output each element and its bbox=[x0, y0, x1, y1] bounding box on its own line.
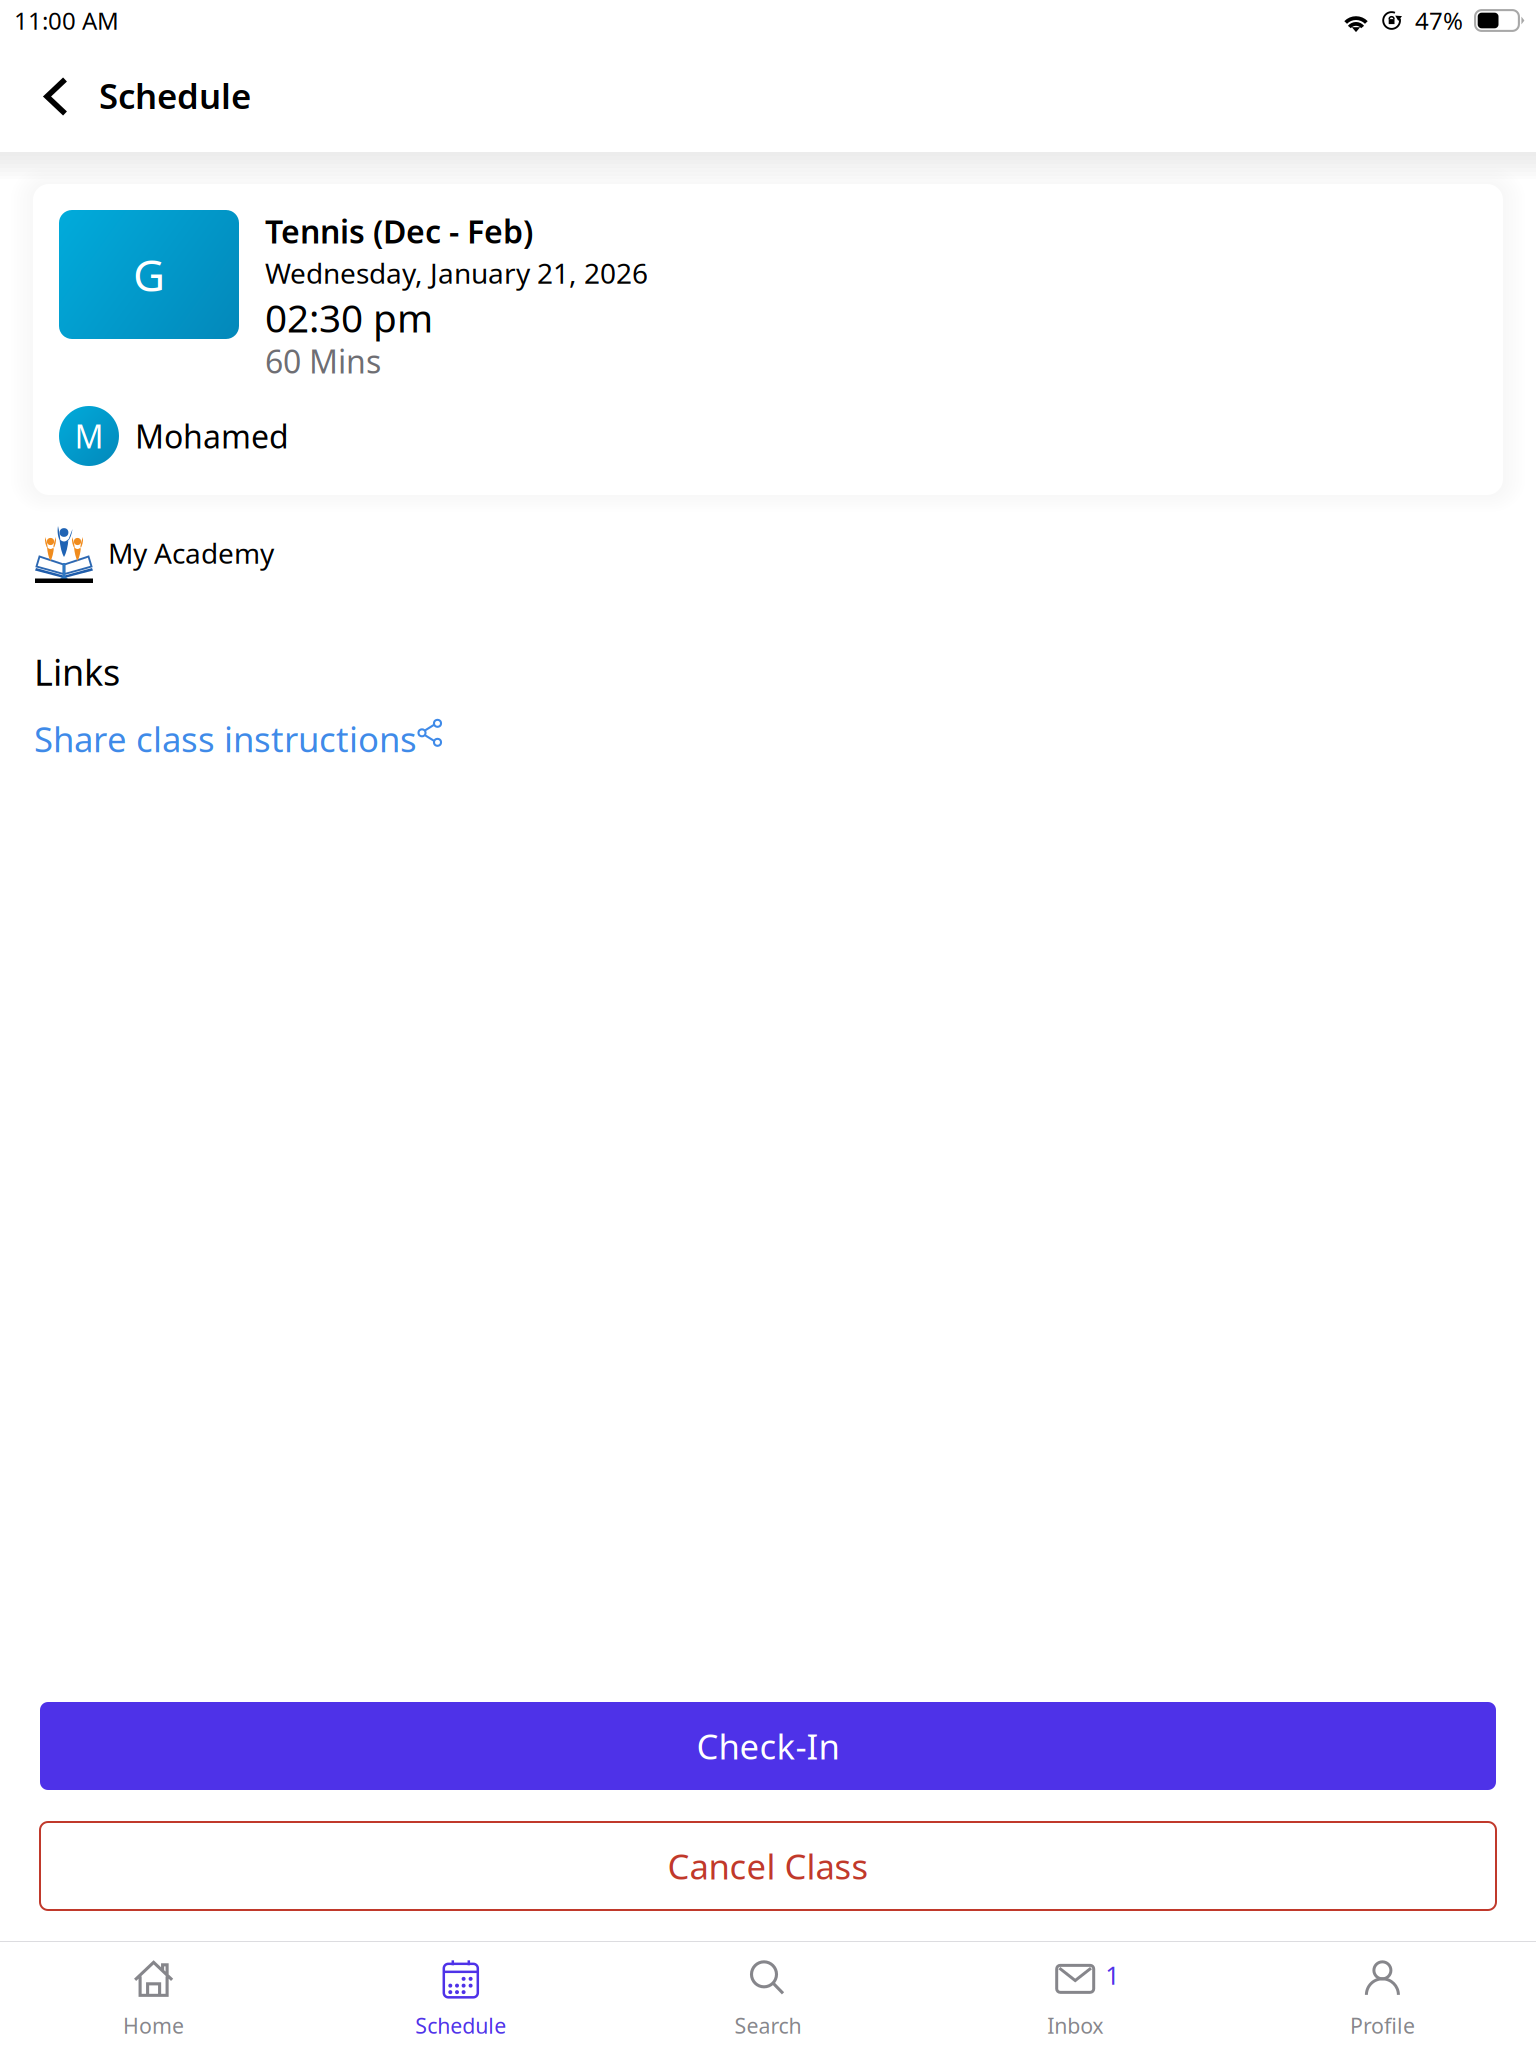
staticText: Check-In bbox=[696, 1723, 839, 1769]
button[interactable]: Inbox bbox=[922, 1941, 1229, 2047]
staticText: My Academy bbox=[108, 534, 274, 572]
button[interactable]: Schedule bbox=[307, 1941, 614, 2047]
staticText: Search bbox=[734, 2011, 801, 2040]
button[interactable]: Profile bbox=[1229, 1941, 1536, 2047]
button[interactable]: Check-In bbox=[40, 1702, 1496, 1790]
staticText: 47% bbox=[1415, 5, 1463, 36]
staticText: Links bbox=[34, 648, 120, 696]
staticText: 02:30 pm bbox=[265, 292, 433, 343]
staticText: Schedule bbox=[415, 2011, 506, 2040]
staticText: 1 bbox=[1105, 1958, 1119, 1992]
staticText: Wednesday, January 21, 2026 bbox=[265, 254, 648, 292]
staticText: Schedule bbox=[99, 72, 251, 118]
staticText: M bbox=[74, 415, 103, 457]
staticText: Tennis (Dec - Feb) bbox=[265, 210, 533, 252]
staticText: 11:00 AM bbox=[14, 5, 119, 36]
button[interactable]: Schedule bbox=[0, 62, 271, 130]
staticText: Home bbox=[123, 2011, 184, 2040]
button[interactable]: Search bbox=[614, 1941, 922, 2047]
button[interactable]: Share class instructions bbox=[34, 696, 1502, 762]
staticText: Share class instructions bbox=[34, 716, 417, 762]
staticText: Cancel Class bbox=[667, 1843, 868, 1889]
staticText: Profile bbox=[1350, 2011, 1415, 2040]
button[interactable]: Cancel Class bbox=[40, 1790, 1496, 1910]
button[interactable]: Home bbox=[0, 1941, 307, 2047]
staticText: 60 Mins bbox=[265, 340, 381, 382]
staticText: Inbox bbox=[1047, 2011, 1103, 2040]
staticText: Mohamed bbox=[135, 415, 289, 457]
staticText: G bbox=[133, 245, 165, 304]
